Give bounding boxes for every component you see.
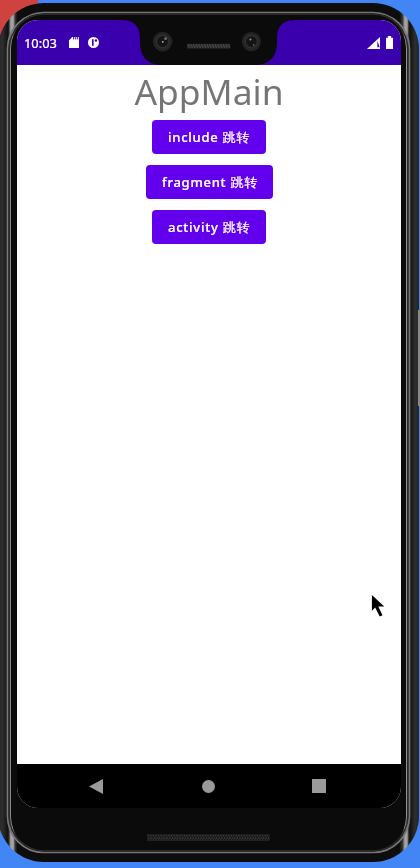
staticText: include 跳转 bbox=[168, 128, 251, 146]
staticText: AppMain bbox=[17, 67, 401, 115]
button[interactable]: activity 跳转 bbox=[152, 210, 266, 244]
button[interactable]: Home bbox=[170, 764, 247, 808]
staticText: 10:03 bbox=[24, 34, 57, 52]
staticText: fragment 跳转 bbox=[162, 173, 258, 191]
button[interactable]: Recents bbox=[280, 764, 357, 808]
button[interactable]: Back bbox=[57, 764, 134, 808]
staticText: activity 跳转 bbox=[168, 218, 251, 236]
button[interactable]: include 跳转 bbox=[152, 120, 266, 154]
button[interactable]: fragment 跳转 bbox=[146, 165, 273, 199]
